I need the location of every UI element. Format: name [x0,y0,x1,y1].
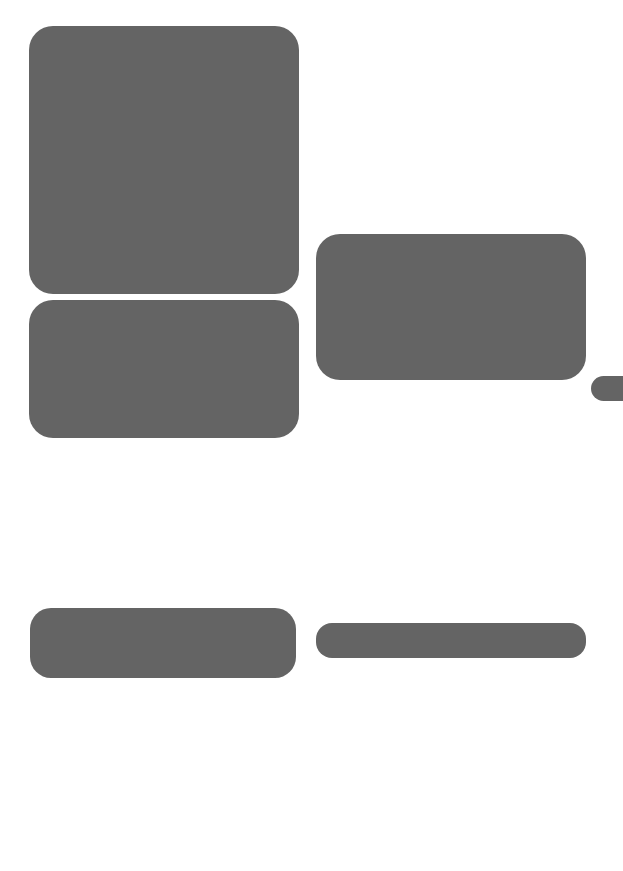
button[interactable]: Open featured item [29,26,299,294]
button[interactable]: Primary action [30,608,296,678]
button[interactable]: Show more items [591,376,623,401]
button[interactable]: Open second item [29,300,299,438]
button[interactable]: Secondary action [316,623,586,658]
button[interactable]: Open third item [316,234,586,380]
